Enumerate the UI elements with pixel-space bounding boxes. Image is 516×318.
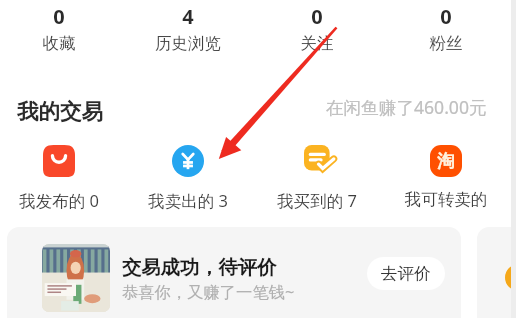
staticText: 0 bbox=[0, 3, 149, 30]
staticText: 在闲鱼赚了460.00元 bbox=[326, 95, 487, 119]
staticText: 关注 bbox=[227, 33, 407, 54]
button[interactable]: 4 bbox=[98, 3, 278, 30]
staticText: 0 bbox=[356, 3, 516, 30]
button[interactable]: 我发布的 bbox=[43, 145, 75, 177]
staticText: 0 bbox=[227, 3, 407, 30]
staticText: 4 bbox=[98, 3, 278, 30]
staticText: 去评价 bbox=[381, 263, 431, 284]
staticText: 我买到的 7 bbox=[227, 189, 407, 212]
button[interactable]: 0 bbox=[227, 3, 407, 30]
button[interactable]: 交易成功，待评价 bbox=[7, 227, 461, 318]
button[interactable]: 去评价 bbox=[367, 257, 445, 290]
button[interactable] bbox=[477, 227, 516, 318]
staticText: 我卖出的 3 bbox=[98, 189, 278, 212]
staticText: 我的交易 bbox=[17, 98, 103, 125]
staticText: 粉丝 bbox=[356, 33, 516, 54]
button[interactable]: 我买到的 bbox=[304, 145, 336, 177]
staticText: 我可转卖的 bbox=[356, 189, 516, 210]
staticText: 收藏 bbox=[0, 33, 149, 54]
button[interactable]: 0 bbox=[356, 3, 516, 30]
button[interactable]: 我卖出的 bbox=[172, 145, 204, 177]
staticText: 交易成功，待评价 bbox=[122, 255, 277, 279]
staticText: 历史浏览 bbox=[98, 33, 278, 54]
staticText: 我发布的 0 bbox=[0, 189, 149, 212]
staticText: 淘 bbox=[437, 150, 455, 172]
button[interactable]: 我可转卖的 bbox=[430, 145, 462, 177]
button[interactable]: 0 bbox=[0, 3, 149, 30]
staticText: 恭喜你，又赚了一笔钱~ bbox=[122, 281, 295, 303]
